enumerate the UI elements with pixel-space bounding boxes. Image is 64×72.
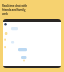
button[interactable] <box>3 19 61 68</box>
staticText: Real-time chat with friends and family, … <box>2 4 64 16</box>
